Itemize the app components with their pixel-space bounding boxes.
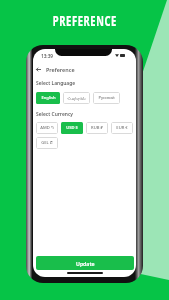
button[interactable]: Back <box>34 65 43 74</box>
staticText: Select Currency <box>36 111 74 118</box>
button[interactable]: Update <box>36 256 134 270</box>
staticText: Preference <box>46 66 75 73</box>
staticText: EUR € <box>116 125 128 131</box>
button[interactable]: Русский <box>93 92 120 104</box>
staticText: English <box>41 95 56 101</box>
button[interactable]: USD $ <box>61 122 83 134</box>
button[interactable]: Հայերեն <box>63 92 90 104</box>
button[interactable]: Back <box>33 62 136 76</box>
button[interactable]: English <box>36 92 60 104</box>
button[interactable]: RUB ₽ <box>86 122 108 134</box>
staticText: USD $ <box>66 125 78 131</box>
staticText: Update <box>76 260 95 267</box>
button[interactable]: EUR € <box>111 122 133 134</box>
staticText: GEL ₾ <box>41 140 53 146</box>
staticText: Հայերեն <box>67 96 86 101</box>
staticText: Select Language <box>36 80 76 87</box>
staticText: Русский <box>98 95 115 101</box>
staticText: PREFERENCE <box>53 10 117 30</box>
button[interactable]: AMD ֏ <box>36 122 58 134</box>
button[interactable]: GEL ₾ <box>36 137 58 149</box>
staticText: RUB ₽ <box>91 125 103 131</box>
staticText: 13:39 <box>41 53 54 59</box>
staticText: AMD ֏ <box>40 125 54 131</box>
